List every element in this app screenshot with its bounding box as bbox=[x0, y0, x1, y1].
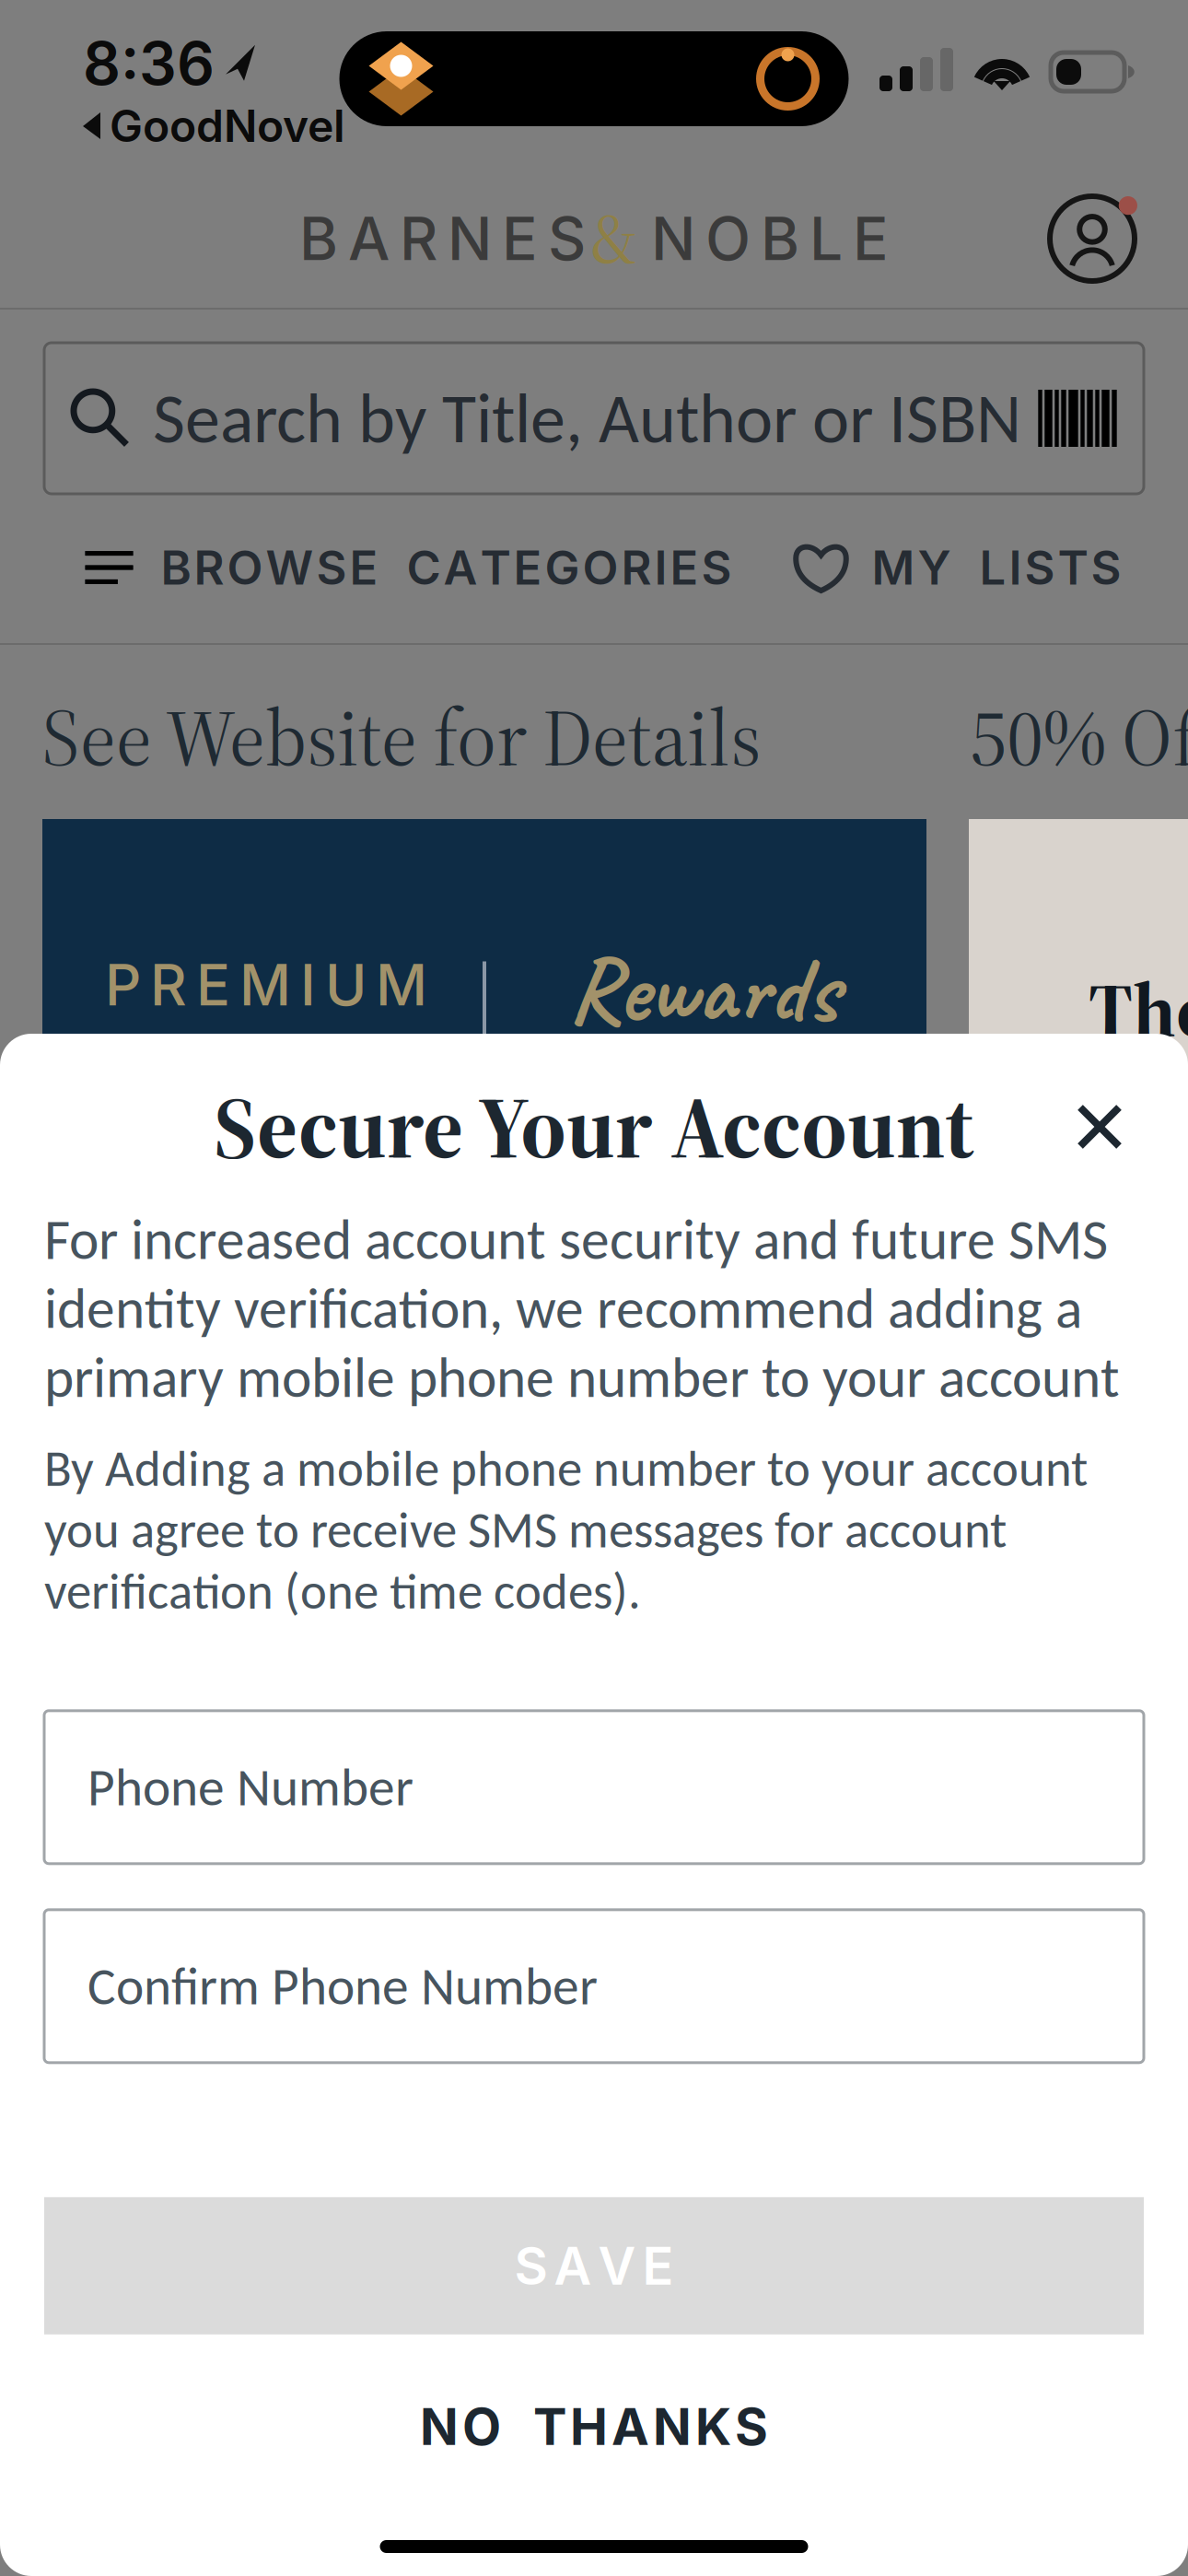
staticText: S bbox=[514, 2235, 547, 2297]
staticText: T bbox=[1058, 539, 1088, 596]
staticText: L bbox=[979, 539, 1006, 596]
staticText: T bbox=[533, 2396, 566, 2457]
staticText: E bbox=[853, 203, 889, 274]
staticText: S bbox=[316, 539, 347, 596]
button[interactable]: M bbox=[767, 517, 1188, 618]
button[interactable]: Close bbox=[1055, 1083, 1144, 1171]
staticText: N bbox=[651, 203, 695, 274]
staticText: 50% Off T bbox=[970, 684, 1188, 791]
staticText: O bbox=[705, 203, 751, 274]
staticText: M bbox=[650, 1056, 692, 1112]
staticText: U bbox=[325, 951, 367, 1019]
staticText: A bbox=[348, 203, 390, 274]
staticText: Rewards bbox=[567, 931, 838, 1048]
staticText: E bbox=[642, 2235, 674, 2297]
staticText: H bbox=[570, 2396, 608, 2457]
staticText: M bbox=[239, 951, 291, 1019]
staticText: E bbox=[349, 539, 378, 596]
staticText: S bbox=[548, 203, 586, 274]
staticText: See Website for Details bbox=[42, 684, 761, 791]
staticText: E bbox=[196, 951, 230, 1019]
staticText: W bbox=[266, 539, 314, 596]
staticText: The bbox=[1089, 957, 1188, 1062]
button[interactable]: B bbox=[0, 517, 759, 618]
button[interactable]: Account bbox=[1035, 181, 1149, 296]
staticText: I bbox=[300, 951, 316, 1019]
staticText: 8:36 bbox=[83, 28, 215, 99]
staticText: S bbox=[735, 2396, 768, 2457]
staticText: E bbox=[513, 539, 542, 596]
button[interactable]: S bbox=[44, 2197, 1144, 2334]
staticText: I bbox=[654, 539, 667, 596]
staticText: L bbox=[809, 203, 843, 274]
staticText: By Adding a mobile phone number to your … bbox=[44, 1438, 1088, 1622]
staticText: E bbox=[502, 203, 538, 274]
staticText: P bbox=[105, 951, 141, 1019]
staticText: E bbox=[670, 539, 699, 596]
staticText: N bbox=[420, 2396, 459, 2457]
staticText: G bbox=[545, 539, 580, 596]
staticText: B bbox=[761, 203, 799, 274]
button[interactable]: Search by Title, Author or ISBN bbox=[44, 343, 1144, 494]
staticText: R bbox=[400, 203, 437, 274]
staticText: I bbox=[1009, 539, 1022, 596]
staticText: For increased account security and futur… bbox=[44, 1205, 1120, 1412]
staticText: S bbox=[1025, 539, 1055, 596]
staticText: K bbox=[695, 2396, 731, 2457]
staticText: A bbox=[554, 2235, 592, 2297]
staticText: S bbox=[701, 539, 732, 596]
staticText: A bbox=[443, 539, 478, 596]
button[interactable]: Confirm Phone Number bbox=[44, 1910, 1144, 2063]
staticText: S bbox=[1091, 539, 1121, 596]
staticText: O bbox=[582, 539, 618, 596]
button[interactable]: Phone Number bbox=[44, 1711, 1144, 1864]
staticText: N bbox=[653, 2396, 692, 2457]
staticText: Secure Your Account bbox=[214, 1067, 974, 1187]
staticText: R bbox=[621, 539, 652, 596]
staticText: V bbox=[598, 2235, 636, 2297]
staticText: Confirm Phone Number bbox=[87, 1954, 598, 2018]
staticText: M bbox=[376, 951, 427, 1019]
staticText: O bbox=[462, 2396, 501, 2457]
staticText: R bbox=[150, 951, 187, 1019]
staticText: R bbox=[194, 539, 224, 596]
staticText: A bbox=[611, 2396, 649, 2457]
staticText: B bbox=[299, 203, 338, 274]
staticText: M bbox=[872, 539, 915, 596]
staticText: O bbox=[227, 539, 263, 596]
staticText: Search by Title, Author or ISBN bbox=[153, 376, 1021, 461]
staticText: C bbox=[407, 539, 441, 596]
staticText: Phone Number bbox=[87, 1755, 413, 1819]
staticText: B bbox=[699, 1056, 730, 1112]
staticText: & bbox=[591, 191, 638, 286]
button[interactable]: N bbox=[44, 2380, 1144, 2473]
staticText: GoodNovel bbox=[110, 99, 345, 152]
staticText: N bbox=[448, 203, 492, 274]
staticText: Y bbox=[918, 539, 951, 596]
staticText: T bbox=[480, 539, 511, 596]
staticText: B bbox=[161, 539, 191, 596]
